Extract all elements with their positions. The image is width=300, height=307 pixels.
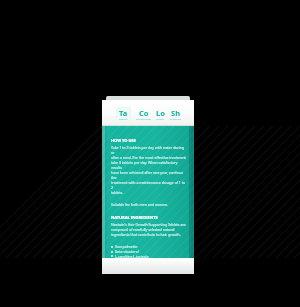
staticText: tablets. <box>111 190 124 195</box>
staticText: Lo <box>156 108 165 118</box>
staticText: CONDITIONER <box>136 118 151 121</box>
staticText: TABLETS <box>119 118 128 121</box>
staticText: L-carnitine L-tartrate <box>115 254 149 258</box>
staticText: ingredients that contribute to hair grow… <box>111 232 181 237</box>
staticText: Sh <box>171 108 181 118</box>
staticText: Take 1 to 3 tablets per day with water d… <box>111 145 186 155</box>
staticText: LOTION <box>156 118 165 121</box>
staticText: Suitable for both men and women. <box>111 202 169 207</box>
staticText: Co <box>139 108 149 118</box>
staticText: SHAMPOO <box>170 118 181 121</box>
staticText: take 3 tablets per day. When satisfactor… <box>111 160 186 170</box>
staticText: have been achieved after one year, conti… <box>111 170 186 180</box>
staticText: HOW TO USE <box>111 138 136 143</box>
staticText: NATURAL INGREDIENTS <box>111 215 158 220</box>
staticText: Nextwin's Hair Growth Supporting Tablets… <box>111 222 186 227</box>
staticText: after a meal. For the most effective tre… <box>111 155 186 160</box>
staticText: treatment with a maintenance dosage of 1… <box>111 180 186 190</box>
staticText: Beta sitosterol <box>115 249 139 254</box>
staticText: composed of carefully selected natural <box>111 227 175 232</box>
staticText: Ta <box>119 108 128 118</box>
button[interactable]: Product package front <box>102 96 194 274</box>
staticText: Saw palmetto <box>115 244 138 249</box>
